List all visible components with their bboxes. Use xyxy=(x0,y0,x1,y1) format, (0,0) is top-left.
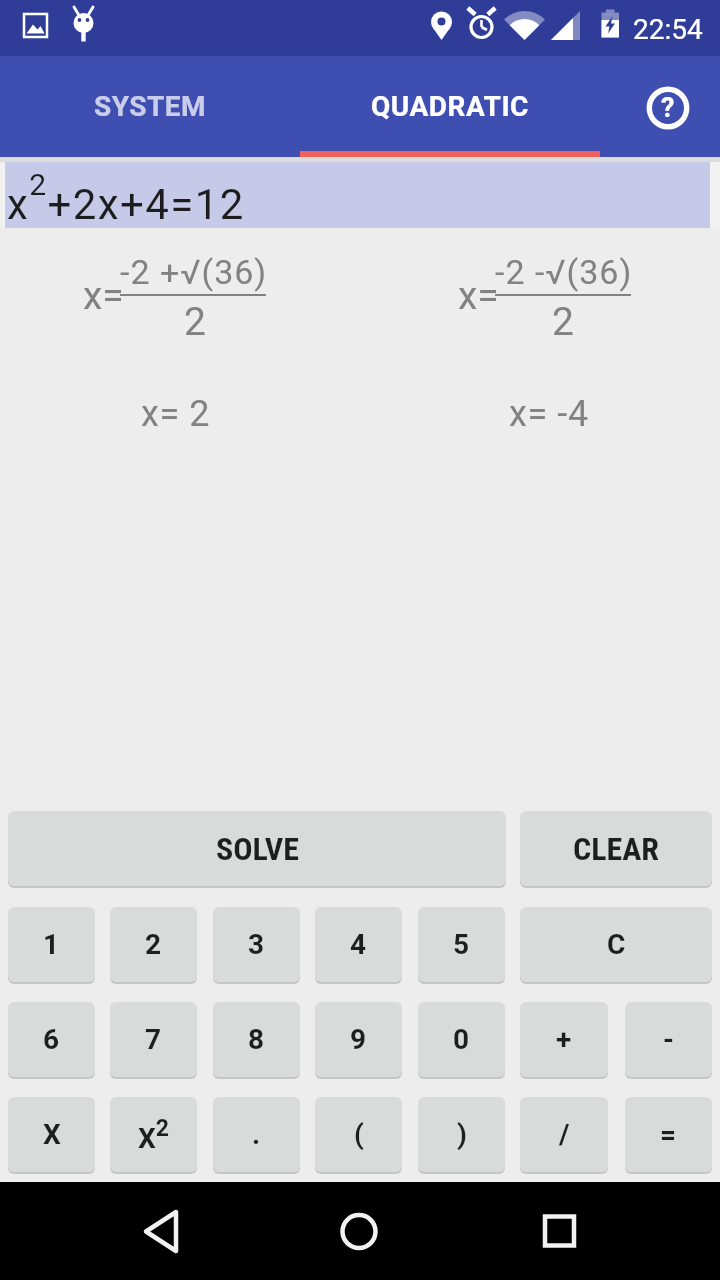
staticText: x= 2 xyxy=(141,393,211,435)
staticText: X xyxy=(43,1118,61,1151)
button[interactable]: 0 xyxy=(418,1002,505,1077)
staticText: ) xyxy=(457,1118,467,1151)
staticText: 4 xyxy=(350,928,367,961)
button[interactable]: CLEAR xyxy=(520,811,712,886)
staticText: x= xyxy=(458,273,499,319)
button[interactable]: = xyxy=(625,1097,712,1172)
staticText: + xyxy=(556,1023,572,1056)
button[interactable]: 1 xyxy=(8,907,95,982)
button[interactable]: 5 xyxy=(418,907,505,982)
button[interactable]: / xyxy=(520,1097,608,1172)
button[interactable]: SYSTEM xyxy=(0,56,300,157)
button[interactable]: 9 xyxy=(315,1002,402,1077)
staticText: 7 xyxy=(145,1023,162,1056)
staticText: 0 xyxy=(453,1023,470,1056)
staticText: -2 -√(36) xyxy=(495,252,633,292)
staticText: SYSTEM xyxy=(94,90,207,123)
button[interactable]: C xyxy=(520,907,712,982)
button[interactable] xyxy=(120,1202,200,1262)
staticText: 2 xyxy=(145,928,162,961)
button[interactable]: + xyxy=(520,1002,608,1077)
staticText: SOLVE xyxy=(216,830,299,868)
button[interactable]: 8 xyxy=(213,1002,300,1077)
staticText: 22:54 xyxy=(633,13,703,46)
staticText: 9 xyxy=(350,1023,367,1056)
button[interactable]: SOLVE xyxy=(8,811,506,886)
staticText: = xyxy=(660,1118,677,1151)
button[interactable]: X xyxy=(8,1097,95,1172)
staticText: CLEAR xyxy=(573,830,660,868)
staticText: . xyxy=(252,1118,261,1151)
staticText: ? xyxy=(661,92,675,124)
button[interactable] xyxy=(5,162,710,228)
button[interactable]: 6 xyxy=(8,1002,95,1077)
staticText: 2 xyxy=(552,299,574,345)
staticText: 3 xyxy=(248,928,265,961)
staticText: 1 xyxy=(43,928,60,961)
button[interactable]: 7 xyxy=(110,1002,197,1077)
button[interactable]: 3 xyxy=(213,907,300,982)
button[interactable]: ( xyxy=(315,1097,402,1172)
staticText: 6 xyxy=(43,1023,60,1056)
staticText: x= -4 xyxy=(509,393,589,435)
staticText: ( xyxy=(354,1118,364,1151)
staticText: / xyxy=(559,1118,570,1151)
staticText: X2 xyxy=(138,1115,169,1155)
button[interactable] xyxy=(520,1202,600,1262)
staticText: - xyxy=(663,1023,674,1056)
button[interactable]: . xyxy=(213,1097,300,1172)
staticText: 2 xyxy=(184,299,206,345)
button[interactable]: - xyxy=(625,1002,712,1077)
staticText: x= xyxy=(83,273,124,319)
button[interactable]: 2 xyxy=(110,907,197,982)
button[interactable]: X2 xyxy=(110,1097,197,1172)
button[interactable]: 4 xyxy=(315,907,402,982)
staticText: 8 xyxy=(248,1023,265,1056)
button[interactable]: QUADRATIC xyxy=(300,56,600,157)
button[interactable]: ? xyxy=(645,85,691,131)
staticText: -2 +√(36) xyxy=(120,252,268,292)
staticText: 5 xyxy=(453,928,470,961)
staticText: QUADRATIC xyxy=(371,90,529,123)
button[interactable] xyxy=(320,1202,400,1262)
staticText: C xyxy=(607,928,626,961)
button[interactable]: ) xyxy=(418,1097,505,1172)
staticText: x2+2x+4=12 xyxy=(7,167,245,229)
